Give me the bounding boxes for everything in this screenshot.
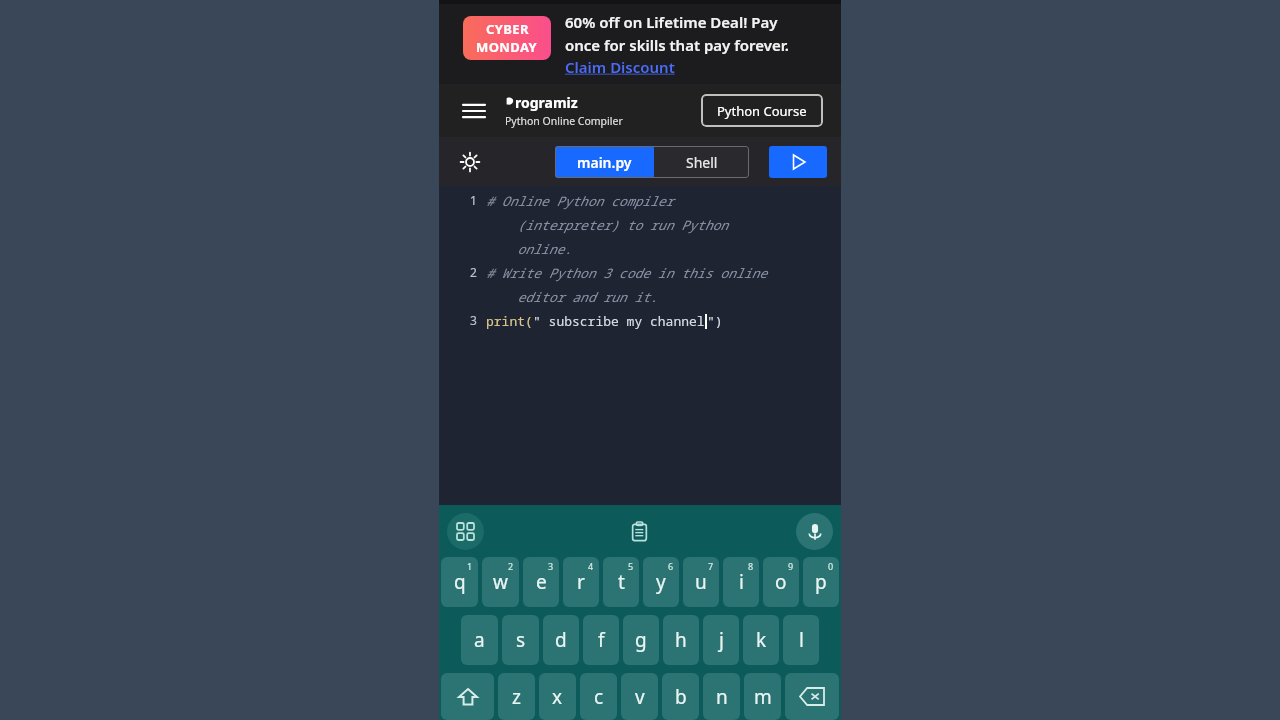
staticText: r: [577, 569, 585, 595]
button[interactable]: k: [743, 615, 779, 665]
staticText: 1: [470, 192, 477, 208]
button[interactable]: 2: [439, 264, 841, 306]
staticText: "): [707, 312, 723, 330]
staticText: 3: [470, 312, 477, 328]
staticText: " subscribe my channel: [533, 312, 705, 330]
staticText: # Online Python compiler: [486, 192, 674, 210]
staticText: o: [775, 569, 787, 595]
staticText: Shell: [686, 153, 718, 172]
staticText: print(: [486, 312, 533, 330]
button[interactable]: r: [563, 557, 599, 607]
staticText: # Write Python 3 code in this online: [486, 264, 767, 282]
staticText: q: [454, 569, 466, 595]
staticText: 7: [708, 560, 714, 572]
button[interactable]: Keyboard options: [447, 513, 484, 550]
button[interactable]: 3: [439, 312, 841, 330]
button[interactable]: u: [683, 557, 719, 607]
staticText: CYBER: [486, 20, 529, 38]
button[interactable]: n: [703, 673, 740, 720]
button[interactable]: Clipboard: [621, 513, 658, 550]
button[interactable]: d: [543, 615, 579, 665]
staticText: 5: [628, 560, 634, 572]
staticText: n: [716, 684, 728, 710]
staticText: 3: [548, 560, 554, 572]
button[interactable]: l: [783, 615, 819, 665]
button[interactable]: Shell: [654, 146, 749, 178]
button[interactable]: y: [643, 557, 679, 607]
button[interactable]: p: [803, 557, 839, 607]
staticText: online.: [486, 240, 572, 258]
staticText: editor and run it.: [486, 288, 658, 306]
staticText: 8: [748, 560, 754, 572]
staticText: c: [594, 684, 604, 710]
staticText: t: [618, 569, 625, 595]
button[interactable]: c: [580, 673, 617, 720]
staticText: m: [754, 684, 772, 710]
staticText: j: [719, 627, 724, 653]
button[interactable]: 1: [439, 192, 841, 258]
staticText: x: [552, 684, 563, 710]
staticText: g: [635, 627, 647, 653]
staticText: d: [555, 627, 567, 653]
staticText: main.py: [577, 153, 632, 172]
staticText: once for skills that pay forever.: [565, 35, 789, 55]
button[interactable]: q: [441, 557, 478, 607]
button[interactable]: i: [723, 557, 759, 607]
button[interactable]: j: [703, 615, 739, 665]
staticText: y: [656, 569, 666, 595]
button[interactable]: x: [539, 673, 576, 720]
staticText: (interpreter) to run Python: [486, 216, 728, 234]
staticText: 0: [828, 560, 834, 572]
staticText: 1: [467, 560, 473, 572]
button[interactable]: a: [461, 615, 498, 665]
button[interactable]: m: [744, 673, 781, 720]
button[interactable]: t: [603, 557, 639, 607]
button[interactable]: z: [498, 673, 535, 720]
button[interactable]: s: [502, 615, 539, 665]
staticText: 4: [588, 560, 594, 572]
button[interactable]: Python Course: [701, 94, 823, 127]
button[interactable]: Theme: [453, 145, 487, 179]
button[interactable]: f: [583, 615, 619, 665]
staticText: 9: [788, 560, 794, 572]
staticText: f: [598, 627, 605, 653]
staticText: u: [695, 569, 707, 595]
button[interactable]: Voice input: [796, 513, 833, 550]
button[interactable]: Claim Discount: [565, 57, 675, 77]
button[interactable]: e: [523, 557, 559, 607]
staticText: Python Course: [717, 102, 807, 120]
staticText: k: [756, 627, 767, 653]
staticText: s: [516, 627, 526, 653]
button[interactable]: g: [623, 615, 659, 665]
button[interactable]: v: [621, 673, 658, 720]
staticText: l: [799, 627, 804, 653]
staticText: 2: [470, 264, 477, 280]
button[interactable]: o: [763, 557, 799, 607]
button[interactable]: Shift: [441, 673, 494, 720]
staticText: Python Online Compiler: [505, 114, 623, 128]
button[interactable]: Run: [769, 146, 827, 178]
staticText: w: [493, 569, 508, 595]
staticText: b: [675, 684, 687, 710]
staticText: 60% off on Lifetime Deal! Pay: [565, 12, 778, 32]
staticText: z: [512, 684, 521, 710]
button[interactable]: rogramiz: [505, 93, 623, 128]
staticText: 2: [508, 560, 514, 572]
button[interactable]: Menu: [457, 94, 491, 128]
staticText: Claim Discount: [565, 57, 675, 77]
button[interactable]: h: [663, 615, 699, 665]
button[interactable]: CYBER: [463, 16, 551, 60]
button[interactable]: b: [662, 673, 699, 720]
button[interactable]: main.py: [555, 146, 654, 178]
staticText: p: [815, 569, 827, 595]
button[interactable]: Backspace: [785, 673, 839, 720]
staticText: rogramiz: [515, 93, 578, 112]
staticText: 6: [668, 560, 674, 572]
staticText: MONDAY: [476, 38, 538, 56]
button[interactable]: w: [482, 557, 519, 607]
staticText: e: [536, 569, 547, 595]
staticText: a: [474, 627, 485, 653]
staticText: i: [739, 569, 744, 595]
staticText: h: [675, 627, 687, 653]
staticText: v: [635, 684, 645, 710]
